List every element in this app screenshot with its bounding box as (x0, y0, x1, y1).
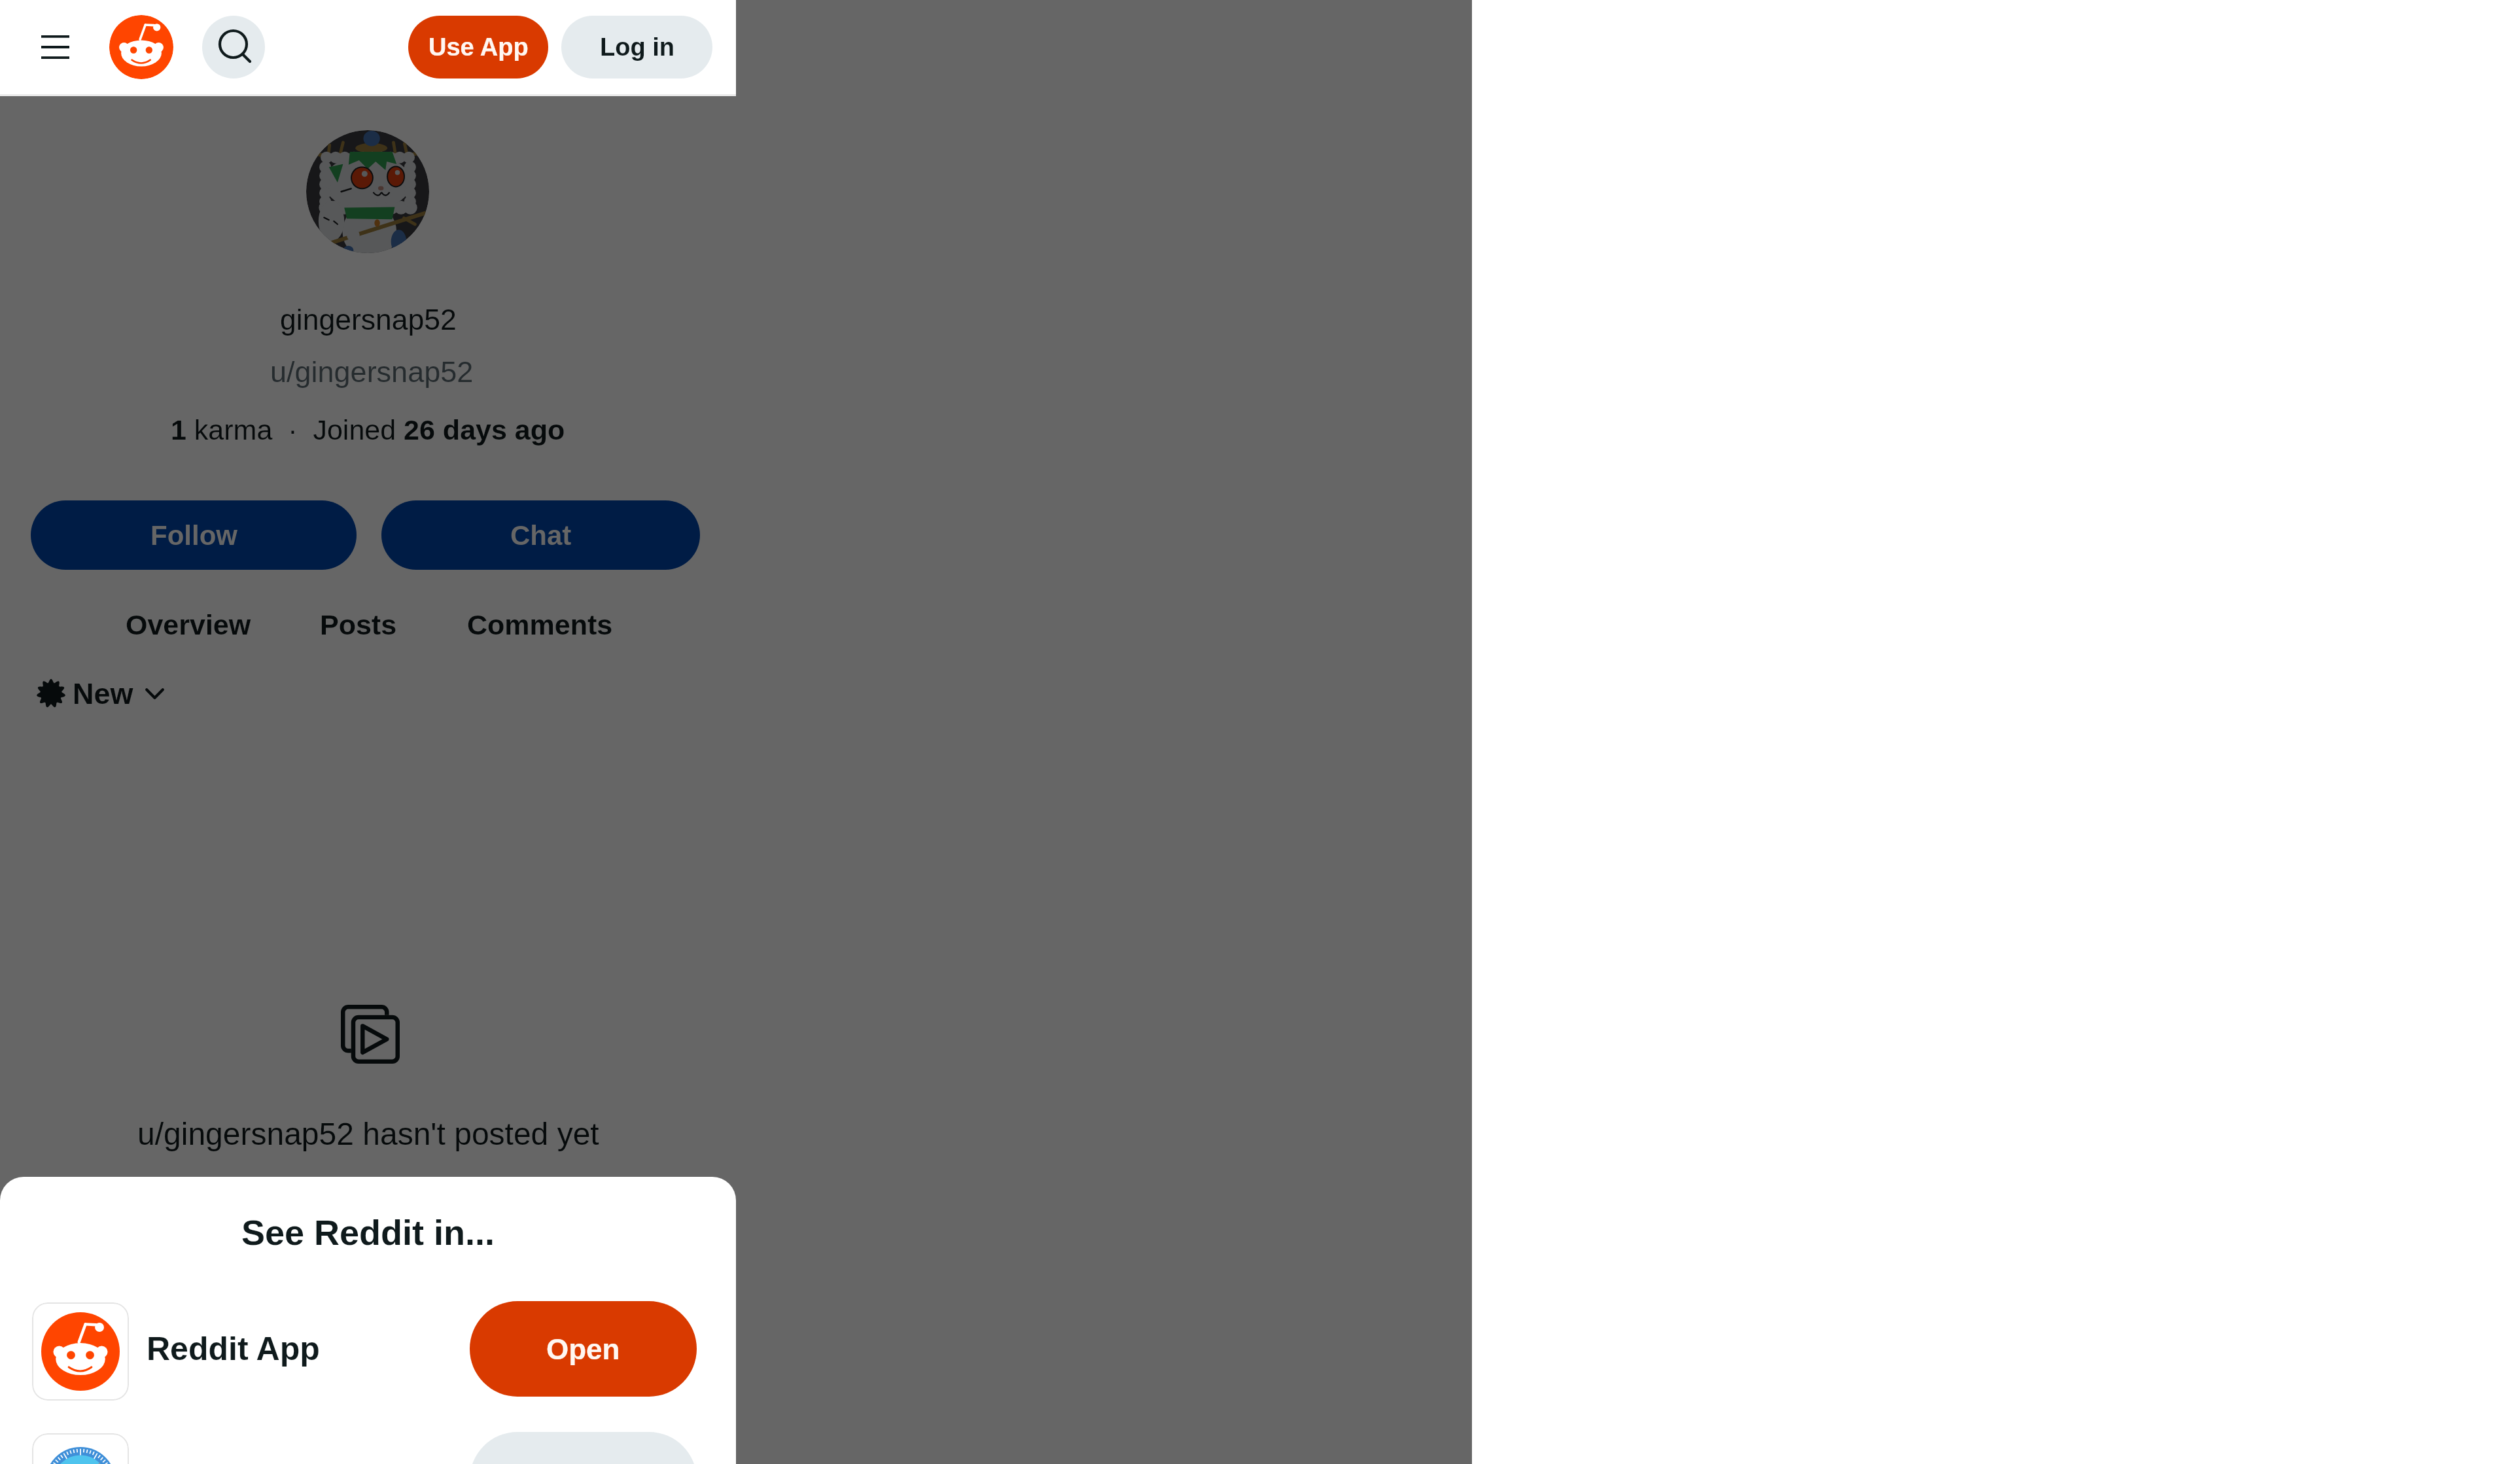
staticText: Comments (467, 609, 613, 640)
staticText: gingersnap52 (280, 304, 457, 336)
button[interactable]: Log in (561, 16, 712, 78)
staticText: Use App (429, 33, 529, 61)
button[interactable]: Use App (408, 16, 548, 78)
button[interactable]: Open (470, 1301, 697, 1397)
button[interactable]: New (37, 674, 164, 713)
button[interactable]: Comments (467, 609, 613, 640)
staticText: u/gingersnap52 hasn't posted yet (137, 1117, 599, 1152)
staticText: u/gingersnap52 (270, 355, 474, 388)
staticText: Posts (320, 609, 397, 640)
staticText: Reddit App (147, 1331, 320, 1367)
staticText: Follow (150, 520, 237, 551)
button[interactable]: Reddit App (0, 1301, 736, 1399)
button[interactable]: Reddit home (109, 15, 173, 79)
staticText: Log in (600, 33, 674, 61)
button[interactable]: Chat (381, 500, 700, 570)
button[interactable]: Posts (320, 609, 397, 640)
staticText: 1 karma · Joined 26 days ago (171, 414, 565, 445)
button[interactable]: Open navigation menu (31, 27, 79, 67)
staticText: New (73, 677, 133, 710)
button[interactable]: Open (470, 1432, 697, 1464)
button[interactable]: Search (202, 16, 265, 78)
button[interactable]: Open (0, 1432, 736, 1464)
staticText: Chat (510, 520, 572, 551)
staticText: See Reddit in... (241, 1213, 495, 1252)
button[interactable]: Overview (126, 609, 251, 640)
staticText: Overview (126, 609, 251, 640)
button[interactable]: Follow (31, 500, 357, 570)
staticText: Open (546, 1333, 620, 1365)
